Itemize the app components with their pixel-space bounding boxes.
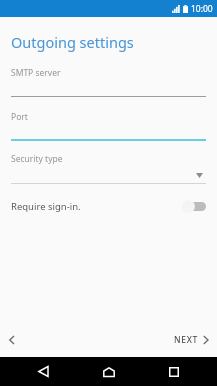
button[interactable]: Require sign-in.	[0, 192, 217, 220]
button[interactable]: Previous step	[0, 328, 23, 352]
staticText: 10:00	[191, 3, 213, 15]
button[interactable]: Back	[20, 357, 66, 386]
other: Open security type list	[196, 173, 203, 178]
staticText: NEXT	[174, 334, 199, 346]
button[interactable]: SMTP server	[0, 67, 217, 97]
button[interactable]: Home	[86, 357, 132, 386]
staticText: Outgoing settings	[11, 32, 134, 52]
button[interactable]: Recent apps	[151, 357, 197, 386]
button[interactable]: Security type	[0, 153, 217, 184]
staticText: Security type	[11, 153, 63, 165]
staticText: SMTP server	[11, 67, 61, 79]
staticText: Require sign-in.	[11, 200, 81, 213]
staticText: Port	[11, 111, 28, 123]
button[interactable]: Port	[0, 111, 217, 141]
button[interactable]: NEXT	[165, 327, 217, 353]
